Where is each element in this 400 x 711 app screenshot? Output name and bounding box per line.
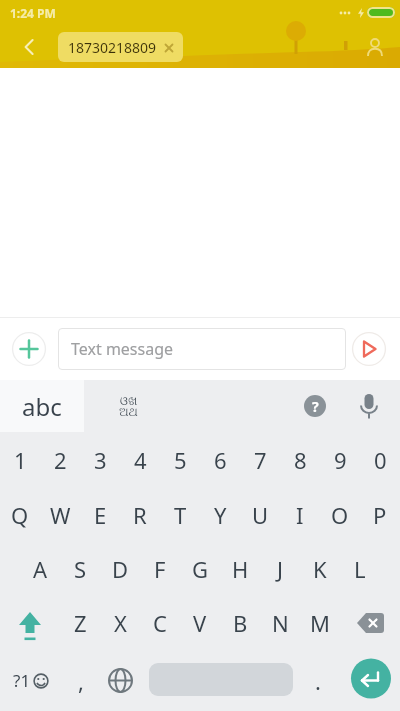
staticText: C: [153, 608, 167, 638]
button[interactable]: J: [260, 542, 300, 596]
button[interactable]: V: [180, 596, 220, 650]
button[interactable]: H: [220, 542, 260, 596]
staticText: W: [50, 500, 71, 530]
button[interactable]: 4: [120, 432, 160, 487]
staticText: 18730218809: [68, 38, 157, 57]
button[interactable]: O: [320, 487, 360, 542]
staticText: 7: [254, 445, 267, 475]
staticText: E: [94, 500, 107, 530]
staticText: 6: [214, 445, 227, 475]
button[interactable]: 18730218809: [58, 32, 183, 62]
staticText: K: [313, 554, 327, 584]
button[interactable]: [342, 650, 400, 711]
staticText: Z: [74, 608, 87, 638]
staticText: 9: [334, 445, 347, 475]
staticText: P: [373, 500, 387, 530]
button[interactable]: B: [220, 596, 260, 650]
staticText: G: [192, 554, 209, 584]
button[interactable]: ,: [62, 650, 100, 711]
button[interactable]: S: [60, 542, 100, 596]
button[interactable]: [0, 596, 60, 650]
button[interactable]: ?1: [0, 650, 62, 711]
staticText: 3: [94, 445, 107, 475]
staticText: S: [74, 554, 87, 584]
staticText: T: [174, 500, 187, 530]
button[interactable]: abc: [0, 380, 84, 432]
staticText: ଓଖ ଅଥ: [119, 395, 138, 418]
button[interactable]: F: [140, 542, 180, 596]
button[interactable]: R: [120, 487, 160, 542]
staticText: D: [112, 554, 129, 584]
staticText: .: [315, 666, 321, 696]
staticText: Q: [11, 500, 29, 530]
staticText: O: [331, 500, 349, 530]
staticText: Text message: [71, 338, 174, 360]
button[interactable]: L: [340, 542, 380, 596]
staticText: A: [33, 554, 48, 584]
button[interactable]: [347, 380, 391, 432]
button[interactable]: A: [20, 542, 60, 596]
staticText: U: [252, 500, 269, 530]
button[interactable]: [100, 650, 140, 711]
button[interactable]: 2: [40, 432, 80, 487]
button[interactable]: I: [280, 487, 320, 542]
staticText: abc: [22, 390, 62, 423]
staticText: 0: [374, 445, 387, 475]
staticText: M: [310, 608, 330, 638]
staticText: ?1: [13, 669, 31, 692]
button[interactable]: 0: [360, 432, 400, 487]
button[interactable]: ?: [293, 380, 337, 432]
button[interactable]: D: [100, 542, 140, 596]
staticText: ,: [78, 666, 84, 696]
button[interactable]: [346, 318, 392, 380]
staticText: B: [233, 608, 248, 638]
staticText: F: [154, 554, 166, 584]
staticText: R: [133, 500, 147, 530]
button[interactable]: 8: [280, 432, 320, 487]
staticText: 1:24 PM: [10, 5, 56, 21]
button[interactable]: Z: [60, 596, 100, 650]
button[interactable]: 3: [80, 432, 120, 487]
button[interactable]: 1: [0, 432, 40, 487]
button[interactable]: .: [294, 650, 342, 711]
button[interactable]: ଓଖ ଅଥ: [84, 380, 172, 432]
staticText: I: [296, 500, 304, 530]
button[interactable]: C: [140, 596, 180, 650]
button[interactable]: K: [300, 542, 340, 596]
button[interactable]: T: [160, 487, 200, 542]
button[interactable]: W: [40, 487, 80, 542]
button[interactable]: 9: [320, 432, 360, 487]
staticText: 2: [54, 445, 67, 475]
button[interactable]: U: [240, 487, 280, 542]
button[interactable]: [149, 663, 293, 696]
staticText: ?: [312, 397, 319, 416]
staticText: 8: [294, 445, 307, 475]
button[interactable]: Y: [200, 487, 240, 542]
staticText: H: [232, 554, 249, 584]
button[interactable]: [0, 318, 58, 380]
staticText: J: [277, 554, 284, 584]
button[interactable]: Text message: [58, 328, 346, 370]
staticText: Y: [214, 500, 227, 530]
button[interactable]: 6: [200, 432, 240, 487]
button[interactable]: Q: [0, 487, 40, 542]
button[interactable]: G: [180, 542, 220, 596]
button[interactable]: E: [80, 487, 120, 542]
button[interactable]: X: [100, 596, 140, 650]
staticText: L: [354, 554, 366, 584]
button[interactable]: [340, 596, 400, 650]
button[interactable]: [350, 25, 400, 68]
button[interactable]: N: [260, 596, 300, 650]
button[interactable]: 7: [240, 432, 280, 487]
button[interactable]: [0, 25, 50, 68]
staticText: N: [272, 608, 289, 638]
button[interactable]: M: [300, 596, 340, 650]
staticText: X: [114, 608, 127, 638]
button[interactable]: P: [360, 487, 400, 542]
staticText: 4: [134, 445, 147, 475]
button[interactable]: 5: [160, 432, 200, 487]
staticText: V: [193, 608, 207, 638]
staticText: 1: [14, 445, 27, 475]
staticText: 5: [174, 445, 187, 475]
